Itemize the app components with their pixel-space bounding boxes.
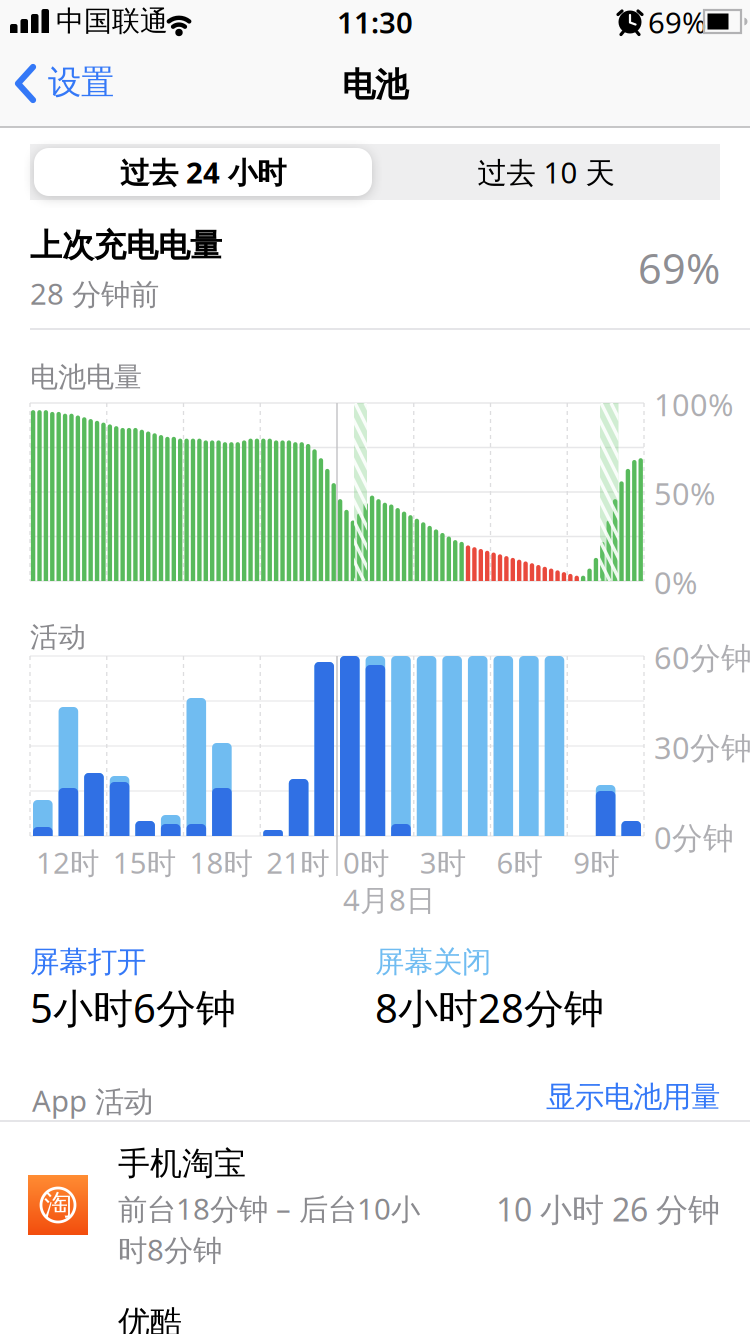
staticText: 28 分钟前 [30,274,159,313]
staticText: 4月8日 [343,880,435,919]
button[interactable]: 设置 [0,61,130,121]
staticText: 30分钟 [654,727,750,768]
button[interactable]: 过去 24 小时 [34,148,372,196]
staticText: 100% [654,384,733,425]
staticText: 设置 [48,62,114,103]
staticText: 显示电池用量 [546,1079,720,1115]
staticText: 10 小时 26 分钟 [496,1188,720,1230]
staticText: 5小时6分钟 [30,981,236,1034]
staticText: 60分钟 [654,637,750,678]
staticText: 50% [654,473,715,514]
staticText: 屏幕打开 [30,944,146,980]
button[interactable]: 显示电池用量 [300,1079,720,1115]
staticText: 8小时28分钟 [375,981,604,1034]
staticText: 活动 [30,620,86,654]
staticText: 0时 [343,843,389,882]
button[interactable]: 过去 10 天 [377,148,715,196]
staticText: 过去 24 小时 [120,152,286,191]
staticText: 0分钟 [654,817,734,858]
staticText: 淘 [44,1188,72,1222]
staticText: 过去 10 天 [477,152,614,191]
button[interactable]: 淘 [0,1122,750,1282]
staticText: 优酷 [118,1303,182,1334]
button[interactable]: 优酷 [0,1282,750,1334]
staticText: 屏幕关闭 [375,944,491,980]
staticText: 上次充电电量 [30,226,222,265]
staticText: 12时 [36,843,99,882]
staticText: 3时 [420,843,466,882]
staticText: 电池 [342,64,408,105]
staticText: 0% [654,562,697,603]
staticText: 69% [638,241,720,295]
staticText: 18时 [189,843,252,882]
staticText: 手机淘宝 [118,1144,246,1183]
staticText: App 活动 [32,1081,153,1120]
staticText: 前台18分钟 – 后台10小 [118,1189,420,1228]
staticText: 9时 [573,843,619,882]
staticText: 电池电量 [30,360,142,394]
staticText: 6时 [496,843,542,882]
staticText: 11:30 [337,2,413,41]
staticText: 69% [648,2,706,41]
staticText: 21时 [266,843,329,882]
staticText: 15时 [113,843,176,882]
staticText: 中国联通 [56,4,168,38]
staticText: 时8分钟 [118,1230,222,1269]
